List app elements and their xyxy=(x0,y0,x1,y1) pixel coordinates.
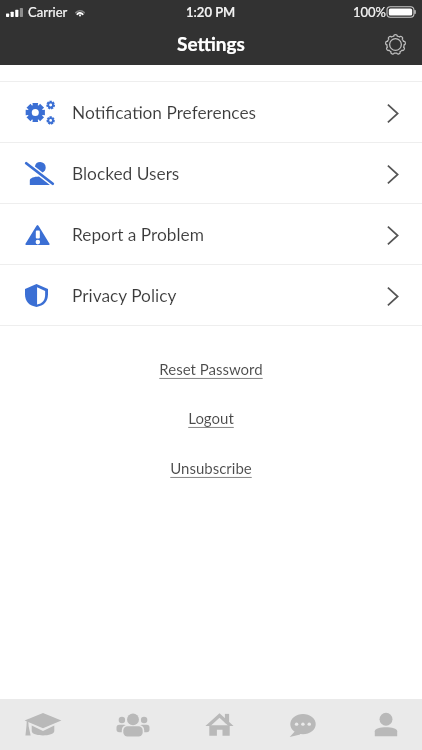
button[interactable]: Notification Preferences xyxy=(0,82,422,142)
staticText: Blocked Users xyxy=(72,163,180,184)
staticText: Report a Problem xyxy=(72,224,204,245)
button[interactable]: Settings xyxy=(380,29,410,59)
button[interactable]: Blocked Users xyxy=(0,143,422,203)
staticText: Logout xyxy=(188,409,234,427)
button[interactable]: Groups xyxy=(91,699,175,750)
button[interactable]: Report a Problem xyxy=(0,204,422,264)
staticText: Carrier xyxy=(28,4,68,20)
staticText: Privacy Policy xyxy=(72,285,177,306)
staticText: 100% xyxy=(353,4,387,20)
button[interactable]: Messages xyxy=(261,699,345,750)
button[interactable]: Profile xyxy=(344,699,422,750)
button[interactable]: Privacy Policy xyxy=(0,265,422,325)
staticText: Settings xyxy=(177,32,245,55)
staticText: Notification Preferences xyxy=(72,102,257,123)
button[interactable]: Unsubscribe xyxy=(164,458,258,478)
staticText: 1:20 PM xyxy=(186,4,236,20)
staticText: Unsubscribe xyxy=(170,459,252,477)
button[interactable]: Courses xyxy=(1,699,85,750)
staticText: Reset Password xyxy=(159,360,263,378)
button[interactable]: Home xyxy=(177,699,261,750)
button[interactable]: Logout xyxy=(182,408,240,428)
button[interactable]: Reset Password xyxy=(153,359,269,379)
